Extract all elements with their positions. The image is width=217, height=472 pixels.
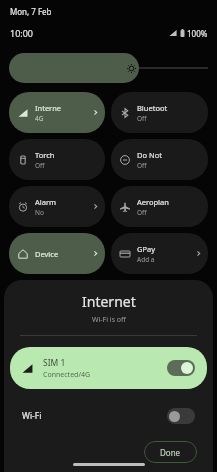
staticText: Alarm — [35, 197, 57, 207]
staticText: Wi-Fi is off — [92, 315, 126, 325]
staticText: Device controls — [35, 249, 63, 259]
staticText: Off — [35, 161, 45, 170]
staticText: Internet — [35, 103, 63, 113]
button[interactable]: Done — [144, 441, 197, 463]
button[interactable]: Device controls — [9, 233, 105, 274]
button[interactable]: Bluetooth — [111, 92, 208, 133]
button[interactable]: Alarm — [9, 186, 105, 227]
button[interactable]: Internet — [9, 92, 105, 133]
button[interactable]: Wi-Fi toggle off — [167, 408, 195, 424]
button[interactable]: GPay — [111, 233, 208, 274]
button[interactable]: Brightness — [9, 53, 208, 83]
button[interactable]: SIM 1 toggle on — [167, 360, 195, 376]
button[interactable]: Wi-Fi — [4, 403, 213, 429]
staticText: Off — [137, 114, 147, 123]
staticText: Internet — [82, 292, 136, 311]
staticText: Torch — [35, 150, 55, 160]
staticText: Mon, 7 Feb — [10, 6, 52, 17]
button[interactable]: Torch — [9, 139, 105, 180]
staticText: Done — [160, 447, 181, 458]
staticText: Add a card — [137, 255, 166, 264]
staticText: Wi-Fi — [22, 410, 42, 422]
button[interactable]: Do Not Disturb — [111, 139, 208, 180]
button[interactable]: Aeroplane mode — [111, 186, 208, 227]
staticText: Bluetooth — [137, 103, 169, 113]
staticText: Do Not Disturb — [137, 150, 169, 160]
staticText: 4G — [35, 114, 44, 123]
staticText: No alarm set — [35, 208, 63, 217]
staticText: Connected/4G — [43, 370, 91, 380]
staticText: Aeroplane mode — [137, 197, 169, 207]
staticText: GPay — [137, 244, 156, 254]
staticText: Off — [137, 208, 147, 217]
staticText: Off — [137, 161, 147, 170]
button[interactable]: SIM 1 — [10, 347, 207, 389]
staticText: 10:00 — [10, 27, 34, 39]
staticText: SIM 1 — [43, 357, 66, 369]
staticText: 100% — [187, 28, 208, 39]
